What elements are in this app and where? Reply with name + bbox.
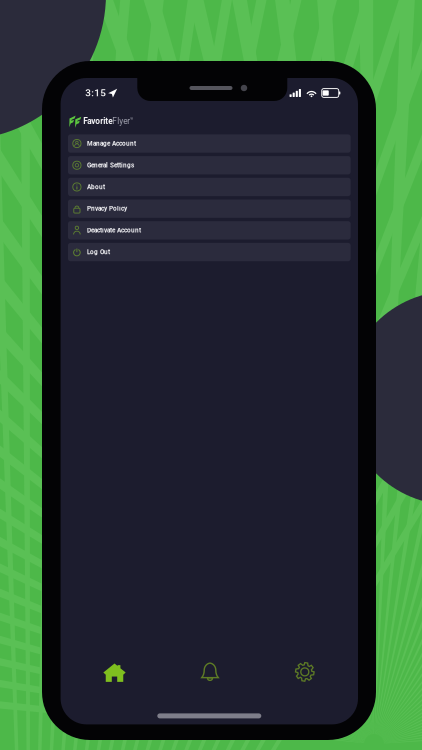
button[interactable]: Manage Account	[68, 134, 351, 153]
staticText: About	[87, 183, 105, 191]
button[interactable]: Log Out	[68, 243, 351, 261]
staticText: Favorite	[83, 116, 112, 126]
staticText: ®	[130, 116, 133, 121]
button[interactable]: Settings	[252, 650, 358, 694]
staticText: Flyer	[112, 116, 130, 126]
button[interactable]: Home	[61, 650, 168, 694]
staticText: Manage Account	[87, 140, 136, 147]
button[interactable]: About	[68, 178, 351, 196]
staticText: 3:15	[85, 87, 106, 99]
staticText: Privacy Policy	[87, 205, 127, 212]
button[interactable]: Privacy Policy	[68, 199, 351, 218]
staticText: Deactivate Account	[87, 227, 141, 234]
staticText: Log Out	[87, 248, 110, 256]
staticText: General Settings	[87, 161, 134, 169]
button[interactable]: Notifications	[168, 650, 252, 694]
button[interactable]: General Settings	[68, 156, 351, 174]
button[interactable]: Deactivate Account	[68, 221, 351, 239]
